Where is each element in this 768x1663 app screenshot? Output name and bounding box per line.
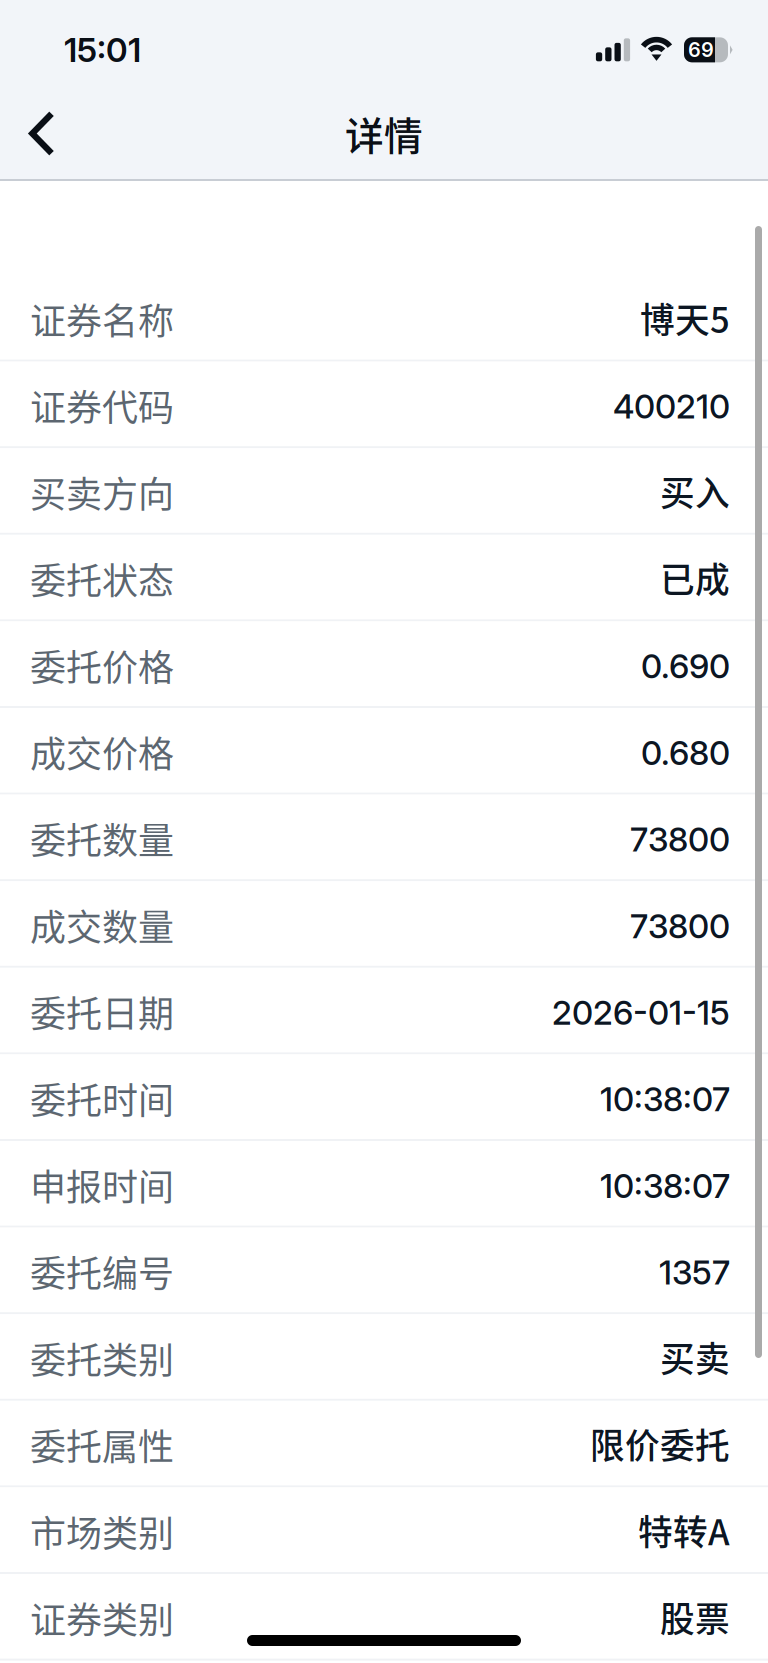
staticText: 委托时间: [30, 1072, 174, 1124]
button[interactable]: 证券类别: [0, 1574, 768, 1661]
staticText: 69: [688, 38, 714, 62]
staticText: 委托数量: [30, 812, 174, 864]
button[interactable]: 委托时间: [0, 1054, 768, 1141]
staticText: 特转A: [638, 1505, 730, 1555]
staticText: 证券类别: [30, 1592, 174, 1644]
button[interactable]: 证券名称: [0, 275, 768, 362]
staticText: 委托状态: [30, 552, 174, 605]
staticText: 详情: [345, 105, 423, 161]
staticText: 申报时间: [30, 1159, 174, 1211]
button[interactable]: 委托数量: [0, 795, 768, 881]
staticText: 股票: [660, 1592, 730, 1642]
staticText: 400210: [613, 386, 730, 426]
staticText: 买卖方向: [30, 466, 174, 518]
staticText: 委托日期: [30, 985, 174, 1038]
staticText: 10:38:07: [600, 1079, 730, 1119]
staticText: 15:01: [64, 30, 141, 70]
staticText: 博天5: [640, 293, 730, 343]
staticText: 成交价格: [30, 726, 174, 778]
button[interactable]: 成交数量: [0, 881, 768, 968]
staticText: 0.690: [641, 646, 730, 686]
staticText: 委托属性: [30, 1418, 174, 1471]
staticText: 委托价格: [30, 639, 174, 691]
staticText: 73800: [630, 819, 730, 859]
button[interactable]: 委托属性: [0, 1401, 768, 1487]
staticText: 证券代码: [30, 379, 174, 431]
staticText: 成交数量: [30, 899, 174, 951]
staticText: 10:38:07: [600, 1166, 730, 1206]
button[interactable]: 申报时间: [0, 1141, 768, 1228]
staticText: 市场类别: [30, 1505, 174, 1557]
staticText: 买入: [660, 466, 730, 516]
button[interactable]: Back: [0, 88, 82, 178]
staticText: 委托编号: [30, 1245, 174, 1297]
staticText: 2026-01-15: [552, 992, 730, 1033]
staticText: 限价委托: [590, 1418, 730, 1469]
staticText: 证券名称: [30, 293, 174, 345]
staticText: 0.680: [641, 733, 730, 773]
staticText: 1357: [659, 1252, 730, 1292]
button[interactable]: 委托日期: [0, 968, 768, 1054]
staticText: 买卖: [660, 1332, 730, 1382]
staticText: 委托类别: [30, 1332, 174, 1384]
button[interactable]: 买卖方向: [0, 448, 768, 535]
button[interactable]: 市场类别: [0, 1487, 768, 1574]
staticText: 73800: [630, 906, 730, 946]
button[interactable]: 委托状态: [0, 535, 768, 621]
staticText: 已成: [660, 552, 730, 603]
button[interactable]: 证券代码: [0, 362, 768, 448]
button[interactable]: 成交价格: [0, 708, 768, 795]
button[interactable]: 委托编号: [0, 1228, 768, 1314]
button[interactable]: 委托类别: [0, 1314, 768, 1401]
button[interactable]: 委托价格: [0, 621, 768, 708]
